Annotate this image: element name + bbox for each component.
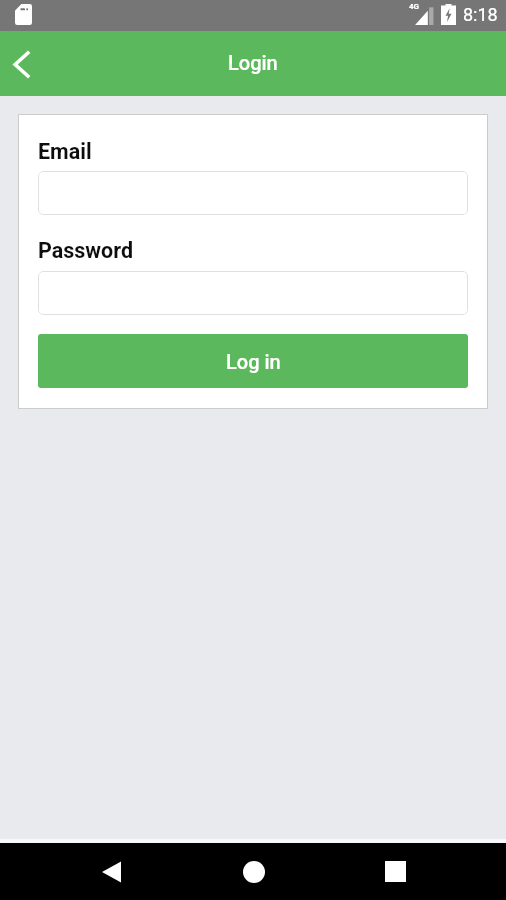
staticText: Email <box>38 139 92 164</box>
button[interactable]: Recent apps <box>372 848 419 895</box>
button[interactable] <box>38 171 468 215</box>
staticText: Log in <box>226 350 281 373</box>
staticText: Password <box>38 238 134 263</box>
staticText: Login <box>228 51 278 74</box>
staticText: 8:18 <box>463 4 498 25</box>
button[interactable]: Back <box>0 31 44 96</box>
button[interactable] <box>38 271 468 315</box>
staticText: 4G <box>409 2 420 11</box>
button[interactable]: Back <box>88 848 135 895</box>
button[interactable]: Log in <box>38 334 468 388</box>
button[interactable]: Home <box>230 848 277 895</box>
